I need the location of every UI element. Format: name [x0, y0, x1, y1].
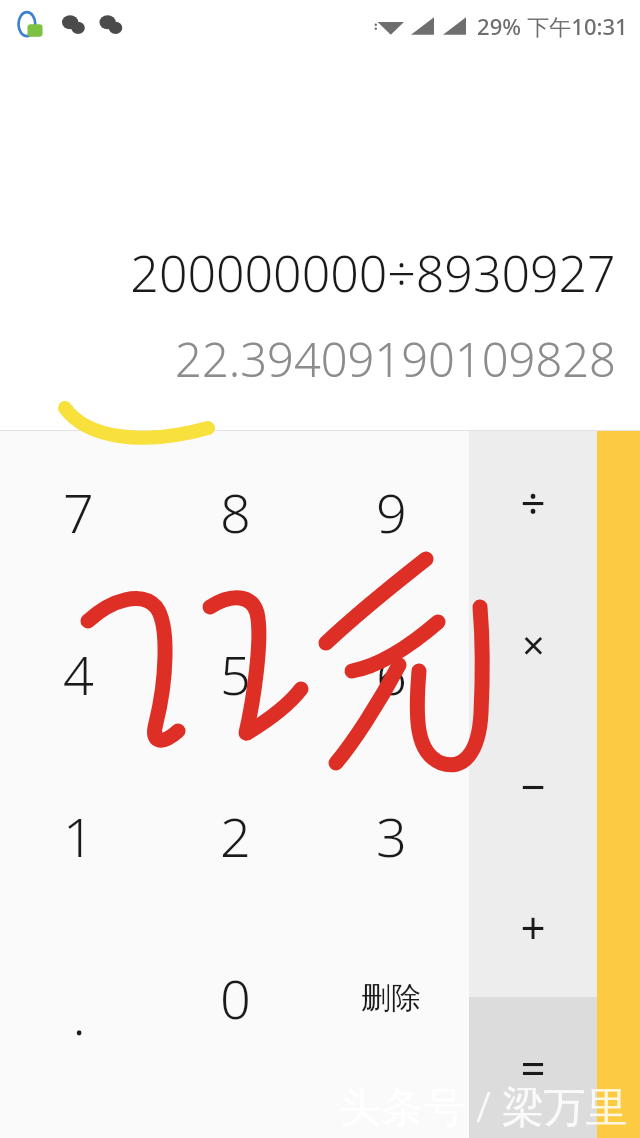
staticText: 5 [220, 637, 251, 711]
button[interactable]: 0 [157, 917, 313, 1079]
button[interactable]: Add [469, 856, 597, 997]
staticText: 头条号 / 梁万里 [339, 1077, 628, 1134]
button[interactable]: 2 [157, 755, 313, 917]
staticText: 删除 [361, 979, 421, 1017]
staticText: 7 [63, 475, 94, 549]
staticText: 8 [220, 475, 251, 549]
staticText: 1 [63, 799, 94, 873]
staticText: 29% [477, 11, 521, 41]
staticText: 200000000÷8930927 [130, 239, 616, 307]
staticText: 6 [376, 637, 407, 711]
button[interactable]: 7 [0, 431, 157, 593]
button[interactable]: 3 [313, 755, 469, 917]
button[interactable]: 5 [157, 593, 313, 755]
staticText: 2 [220, 799, 251, 873]
staticText: − [520, 756, 546, 816]
button[interactable]: 8 [157, 431, 313, 593]
button[interactable]: Clear [597, 431, 640, 1138]
staticText: ÷ [520, 472, 546, 532]
button[interactable]: 删除 [313, 917, 469, 1079]
button[interactable]: Divide [469, 431, 597, 573]
button[interactable]: 6 [313, 593, 469, 755]
staticText: 22.39409190109828 [175, 327, 616, 391]
button[interactable]: . [0, 917, 157, 1079]
staticText: 9 [376, 475, 407, 549]
button[interactable]: Multiply [469, 573, 597, 715]
button[interactable]: 4 [0, 593, 157, 755]
staticText: 3 [376, 799, 407, 873]
staticText: = [520, 1038, 546, 1098]
staticText: × [522, 617, 545, 671]
staticText: 下午10:31 [527, 11, 628, 41]
button[interactable]: Equals [469, 997, 597, 1138]
staticText: . [72, 977, 86, 1051]
button[interactable]: 1 [0, 755, 157, 917]
staticText: 0 [220, 961, 251, 1035]
staticText: + [520, 897, 546, 957]
button[interactable]: 9 [313, 431, 469, 593]
staticText: 4 [63, 637, 94, 711]
button[interactable]: Subtract [469, 715, 597, 856]
